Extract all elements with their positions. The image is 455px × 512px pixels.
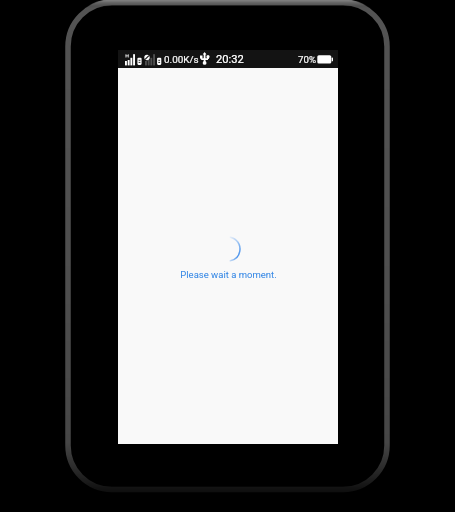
- staticText: 70%: [298, 54, 316, 65]
- staticText: 0.00K/s: [164, 54, 199, 66]
- staticText: Please wait a moment.: [180, 269, 277, 280]
- staticText: 20:32: [216, 53, 244, 66]
